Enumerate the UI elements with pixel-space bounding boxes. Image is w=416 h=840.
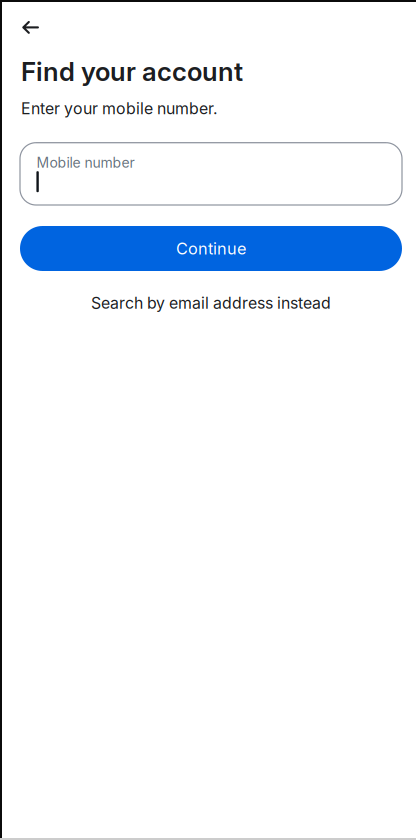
staticText: Continue: [176, 239, 246, 258]
button[interactable]: Search by email address instead: [20, 286, 402, 320]
staticText: Search by email address instead: [91, 293, 331, 313]
staticText: Find your account: [21, 56, 243, 87]
staticText: Enter your mobile number.: [21, 99, 218, 118]
staticText: Mobile number: [36, 154, 134, 171]
button[interactable]: Back: [2, 8, 48, 52]
button[interactable]: Mobile number: [20, 143, 402, 205]
button[interactable]: Continue: [20, 226, 402, 271]
